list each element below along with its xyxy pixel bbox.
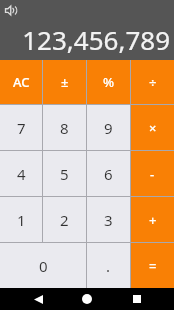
staticText: AC: [13, 73, 30, 91]
button[interactable]: ÷: [131, 60, 174, 104]
staticText: 4: [17, 164, 26, 184]
button[interactable]: 2: [43, 197, 86, 242]
button[interactable]: ±: [43, 60, 86, 104]
button[interactable]: =: [131, 243, 174, 288]
staticText: +: [149, 211, 157, 229]
button[interactable]: 3: [87, 197, 130, 242]
button[interactable]: 9: [87, 105, 130, 150]
staticText: 6: [104, 164, 113, 184]
staticText: =: [149, 257, 157, 275]
button[interactable]: 7: [0, 105, 42, 150]
staticText: 2: [60, 210, 69, 230]
staticText: 123,456,789: [22, 22, 170, 57]
button[interactable]: 6: [87, 151, 130, 196]
button[interactable]: -: [131, 151, 174, 196]
staticText: 5: [60, 164, 69, 184]
staticText: 8: [60, 118, 69, 138]
staticText: ÷: [149, 73, 157, 91]
staticText: 1: [17, 210, 26, 230]
button[interactable]: Recent apps: [125, 288, 149, 310]
staticText: %: [103, 73, 115, 91]
staticText: ×: [149, 119, 157, 137]
button[interactable]: 8: [43, 105, 86, 150]
button[interactable]: ×: [131, 105, 174, 150]
button[interactable]: %: [87, 60, 130, 104]
button[interactable]: 1: [0, 197, 42, 242]
staticText: ±: [61, 73, 69, 91]
button[interactable]: Back: [26, 288, 50, 310]
staticText: 0: [39, 256, 48, 276]
staticText: .: [106, 256, 111, 276]
staticText: 3: [104, 210, 113, 230]
button[interactable]: 5: [43, 151, 86, 196]
button[interactable]: 0: [0, 243, 86, 288]
button[interactable]: 4: [0, 151, 42, 196]
staticText: 7: [17, 118, 26, 138]
button[interactable]: Home: [75, 288, 99, 310]
button[interactable]: +: [131, 197, 174, 242]
staticText: -: [150, 165, 155, 183]
staticText: 9: [104, 118, 113, 138]
button[interactable]: .: [87, 243, 130, 288]
button[interactable]: AC: [0, 60, 42, 104]
